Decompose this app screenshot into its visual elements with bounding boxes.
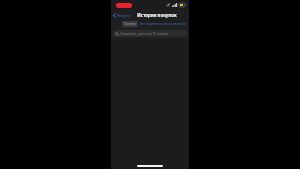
- button[interactable]: Показать: [122, 21, 138, 27]
- staticText: Показать: [124, 22, 136, 26]
- button[interactable]: Название, дата или ID заказа: [113, 30, 187, 37]
- button[interactable]: Услуги: [111, 10, 133, 20]
- button[interactable]: Все покупки за месяц, включая: [140, 22, 186, 26]
- staticText: Название, дата или ID заказа: [120, 31, 169, 36]
- staticText: История покупок: [137, 12, 177, 18]
- staticText: Услуги: [117, 13, 130, 18]
